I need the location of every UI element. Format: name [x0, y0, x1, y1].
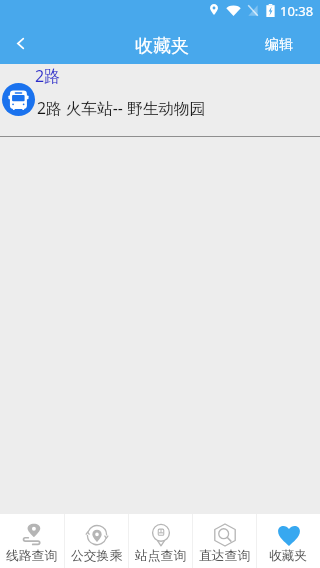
staticText: 编辑 — [265, 36, 293, 54]
staticText: 2路 火车站-- 野生动物园 — [37, 97, 206, 118]
staticText: 10:38 — [280, 2, 314, 20]
staticText: 收藏夹 — [269, 548, 308, 564]
staticText: 直达查询 — [199, 548, 251, 564]
staticText: 2路 — [35, 65, 61, 87]
button[interactable]: Back — [0, 27, 40, 66]
button[interactable]: 公交换乘 — [65, 514, 128, 568]
staticText: 收藏夹 — [135, 35, 189, 58]
staticText: 站点查询 — [135, 548, 187, 564]
button[interactable]: 站点查询 — [129, 514, 192, 568]
button[interactable]: 编辑 — [257, 30, 301, 60]
button[interactable]: 收藏夹 — [257, 514, 320, 568]
button[interactable]: 线路查询 — [0, 514, 64, 568]
staticText: 公交换乘 — [71, 548, 123, 564]
button[interactable]: 2路 — [0, 64, 320, 136]
button[interactable]: 直达查询 — [193, 514, 256, 568]
staticText: 线路查询 — [6, 548, 58, 564]
